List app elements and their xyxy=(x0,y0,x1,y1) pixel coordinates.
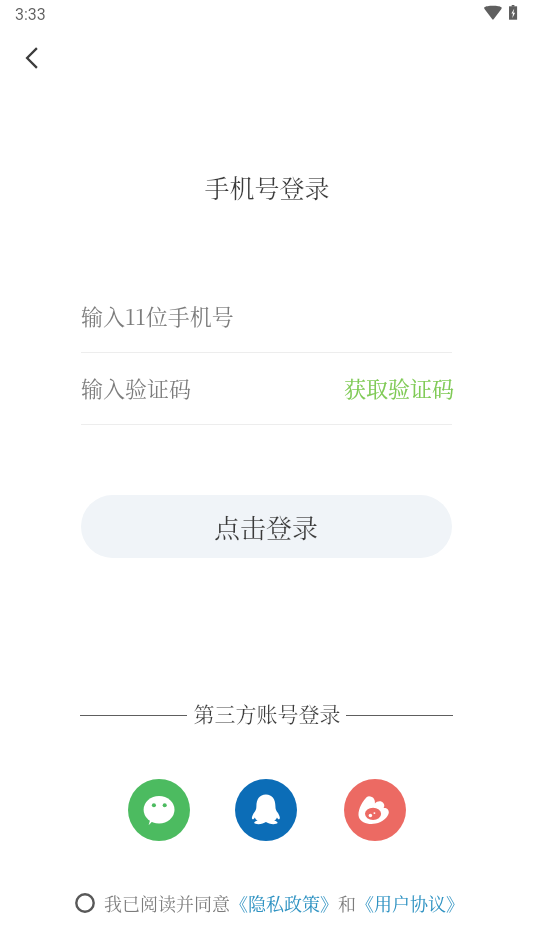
staticText: 第三方账号登录 xyxy=(0,698,534,728)
staticText: 点击登录 xyxy=(214,508,319,545)
button[interactable]: QQ login xyxy=(235,779,297,841)
button[interactable]: Agree to terms xyxy=(75,889,95,917)
button[interactable]: 《隐私政策》 xyxy=(230,890,338,916)
staticText: 输入11位手机号 xyxy=(81,300,234,332)
button[interactable]: Back xyxy=(8,35,54,81)
staticText: 和 xyxy=(338,890,356,916)
button[interactable]: Weibo login xyxy=(344,779,406,841)
staticText: 获取验证码 xyxy=(344,372,455,404)
button[interactable]: 《用户协议》 xyxy=(356,890,464,916)
staticText: 3:33 xyxy=(15,5,46,24)
staticText: 我已阅读并同意 xyxy=(104,890,230,916)
button[interactable]: 获取验证码 xyxy=(330,368,454,408)
button[interactable]: WeChat login xyxy=(128,779,190,841)
staticText: 输入验证码 xyxy=(81,372,192,404)
button[interactable]: 点击登录 xyxy=(81,495,452,558)
staticText: 手机号登录 xyxy=(0,169,534,205)
